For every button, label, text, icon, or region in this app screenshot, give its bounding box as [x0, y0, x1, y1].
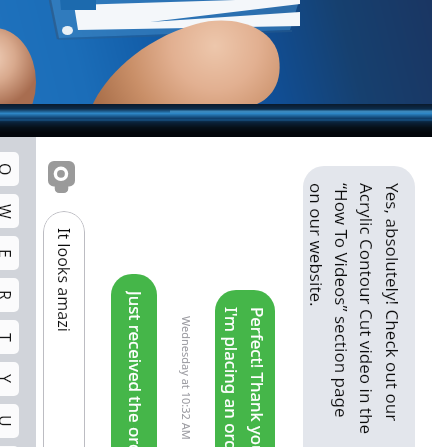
staticText: Just received the order confirmation. — [124, 291, 147, 447]
staticText: T — [0, 333, 16, 342]
staticText: It looks amazi — [53, 228, 75, 332]
button[interactable]: It looks amazi — [43, 211, 85, 447]
staticText: Yes, absolutely! Check out our Acrylic C… — [305, 183, 404, 435]
staticText: Y — [0, 374, 16, 384]
button[interactable]: U — [0, 404, 19, 438]
button[interactable]: T — [0, 320, 19, 354]
staticText: Perfect! Thank you so much. I'm placing … — [220, 307, 269, 447]
button[interactable]: Just received the order confirmation. — [111, 274, 157, 447]
staticText: Wednesday at 10:32 AM — [179, 316, 194, 440]
staticText: R — [0, 290, 16, 300]
button[interactable]: I — [0, 446, 19, 447]
button[interactable]: Q — [0, 152, 19, 186]
button[interactable]: Yes, absolutely! Check out our Acrylic C… — [303, 166, 415, 447]
button[interactable]: Perfect! Thank you so much. I'm placing … — [215, 290, 275, 447]
staticText: U — [0, 415, 16, 427]
button[interactable]: Camera — [44, 157, 80, 197]
staticText: Q — [0, 163, 16, 176]
button[interactable]: R — [0, 278, 19, 312]
button[interactable]: E — [0, 236, 19, 270]
staticText: W — [0, 204, 16, 219]
staticText: E — [0, 249, 16, 258]
button[interactable]: Y — [0, 362, 19, 396]
button[interactable]: W — [0, 194, 19, 228]
